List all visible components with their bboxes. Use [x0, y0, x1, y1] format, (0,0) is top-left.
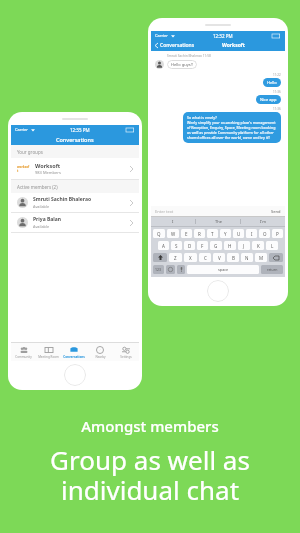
button[interactable]: Conversations [61, 343, 87, 361]
staticText: Active members (2) [17, 184, 58, 190]
staticText: N [245, 255, 249, 261]
staticText: Amongst members [81, 416, 219, 436]
staticText: J [243, 243, 245, 249]
staticText: 11:36 [273, 90, 281, 94]
staticText: 983 Members [35, 170, 61, 175]
staticText: T [211, 231, 214, 237]
button[interactable]: I [246, 229, 257, 238]
button[interactable]: E [181, 229, 192, 238]
staticText: Conversations [160, 42, 195, 49]
button[interactable]: Dictate [177, 265, 185, 274]
button[interactable]: Return [261, 265, 283, 274]
button[interactable]: space [187, 265, 259, 274]
button[interactable]: Z [169, 253, 182, 262]
staticText: Q [157, 231, 161, 237]
staticText: D [188, 243, 192, 249]
button[interactable]: F [197, 241, 208, 250]
staticText: S [175, 243, 178, 249]
staticText: Community [15, 355, 32, 359]
staticText: B [232, 255, 235, 261]
staticText: return [267, 267, 278, 272]
staticText: Carrier [15, 127, 29, 132]
button[interactable]: worksoft [11, 158, 139, 179]
staticText: So what is emely? Weely simplify your co… [187, 115, 277, 140]
staticText: 11:36 [273, 107, 281, 111]
staticText: Carrier [155, 33, 169, 38]
button[interactable]: Send [271, 209, 281, 214]
staticText: M [259, 255, 264, 261]
button[interactable]: X [184, 253, 197, 262]
staticText: Smruti Sachin Bhalerao 11:58 [167, 54, 211, 58]
button[interactable]: T [207, 229, 218, 238]
button[interactable]: Emoji [166, 265, 175, 274]
button[interactable]: W [167, 229, 179, 238]
button[interactable]: Smruti Sachin Bhalerao [11, 193, 139, 212]
button[interactable]: G [210, 241, 222, 250]
button[interactable]: A [158, 241, 169, 250]
staticText: Worksoft [222, 42, 245, 49]
button[interactable]: Settings [113, 343, 139, 361]
button[interactable]: S [171, 241, 182, 250]
staticText: V [218, 255, 221, 261]
button[interactable]: B [227, 253, 239, 262]
button[interactable]: D [184, 241, 195, 250]
staticText: U [237, 231, 241, 237]
staticText: Available [33, 224, 50, 229]
staticText: A [162, 243, 165, 249]
staticText: X [189, 255, 192, 261]
button[interactable]: J [238, 241, 250, 250]
staticText: Conversations [56, 136, 94, 143]
staticText: K [257, 243, 260, 249]
button[interactable]: P [272, 229, 283, 238]
button[interactable]: Numbers [153, 265, 164, 274]
button[interactable]: U [233, 229, 244, 238]
button[interactable]: Backspace [269, 253, 283, 262]
staticText: P [276, 231, 279, 237]
staticText: worksoft [17, 165, 30, 173]
button[interactable]: M [255, 253, 267, 262]
staticText: 123 [155, 267, 162, 272]
staticText: Smruti Sachin Bhalerao [33, 196, 92, 203]
staticText: The [215, 219, 222, 224]
button[interactable]: Priya Balan [11, 213, 139, 232]
staticText: Send [271, 209, 281, 214]
staticText: G [214, 243, 218, 249]
staticText: Settings [120, 355, 132, 359]
staticText: Y [224, 231, 227, 237]
staticText: Worksoft [35, 162, 61, 169]
button[interactable]: Nearby [87, 343, 113, 361]
staticText: Group as well as individual chat [50, 442, 250, 507]
button[interactable]: N [241, 253, 253, 262]
button[interactable]: Q [153, 229, 165, 238]
button[interactable]: H [224, 241, 236, 250]
staticText: L [271, 243, 274, 249]
button[interactable]: shift [153, 253, 167, 262]
staticText: space [218, 267, 229, 272]
button[interactable]: K [252, 241, 264, 250]
staticText: 11:22 [273, 73, 281, 77]
staticText: I [251, 231, 253, 237]
button[interactable]: C [199, 253, 211, 262]
button[interactable]: I'm [241, 217, 285, 226]
staticText: Priya Balan [33, 216, 62, 223]
button[interactable]: Meeting Room [36, 343, 61, 361]
staticText: H [228, 243, 232, 249]
staticText: 12:32 PM [213, 33, 233, 39]
button[interactable]: L [266, 241, 278, 250]
staticText: Your groups [17, 149, 43, 155]
button[interactable]: V [213, 253, 225, 262]
button[interactable]: The [196, 217, 240, 226]
button[interactable]: I [151, 217, 195, 226]
button[interactable]: Back to Conversations [155, 42, 195, 49]
button[interactable]: Y [220, 229, 231, 238]
staticText: Meeting Room [38, 355, 59, 359]
button[interactable]: Community [11, 343, 36, 361]
button[interactable]: O [259, 229, 270, 238]
staticText: R [198, 231, 201, 237]
button[interactable]: R [194, 229, 205, 238]
staticText: Available [33, 204, 50, 209]
staticText: I'm [260, 219, 266, 224]
staticText: Z [174, 255, 177, 261]
staticText: Hello [267, 80, 277, 85]
staticText: E [185, 231, 188, 237]
